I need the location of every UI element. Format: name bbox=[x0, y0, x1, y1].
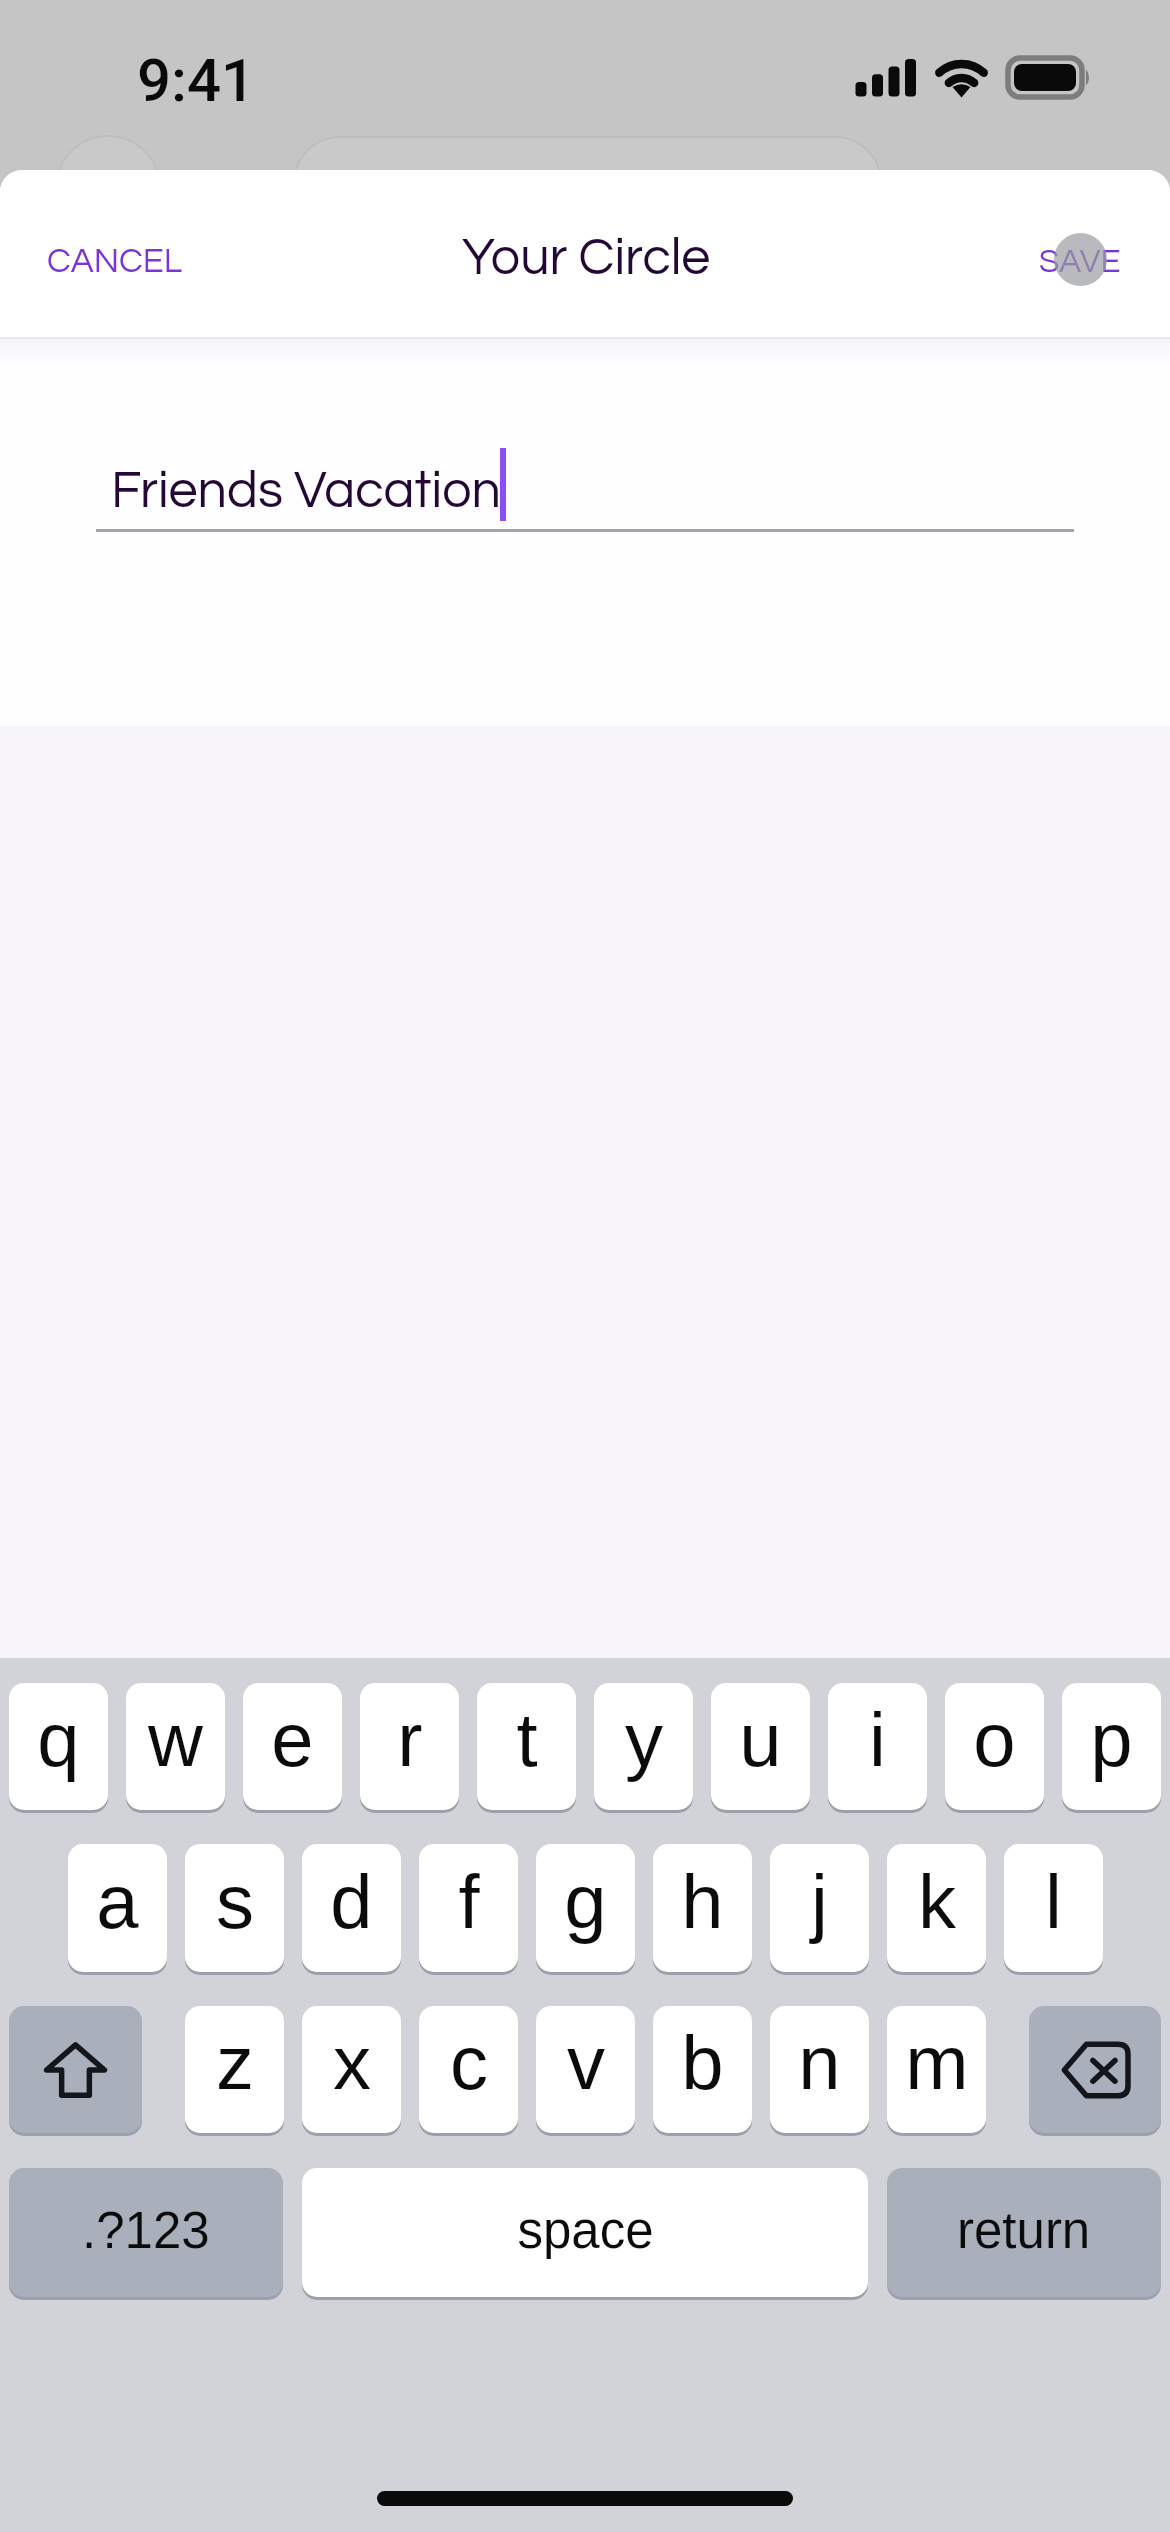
button[interactable]: p bbox=[1062, 1683, 1161, 1810]
staticText: s bbox=[216, 1859, 254, 1944]
button[interactable]: q bbox=[9, 1683, 108, 1810]
button[interactable]: CANCEL bbox=[20, 219, 210, 305]
button[interactable]: c bbox=[419, 2006, 518, 2133]
button[interactable]: d bbox=[302, 1844, 401, 1972]
staticText: CANCEL bbox=[47, 244, 183, 280]
staticText: x bbox=[333, 2020, 371, 2105]
button[interactable]: space bbox=[302, 2168, 868, 2297]
button[interactable]: o bbox=[945, 1683, 1044, 1810]
button[interactable]: b bbox=[653, 2006, 752, 2133]
button[interactable]: s bbox=[185, 1844, 284, 1972]
staticText: g bbox=[564, 1859, 607, 1944]
button[interactable]: Backspace bbox=[1029, 2006, 1161, 2133]
button[interactable]: l bbox=[1004, 1844, 1103, 1972]
button[interactable]: r bbox=[360, 1683, 459, 1810]
staticText: Your Circle bbox=[462, 231, 711, 285]
button[interactable]: n bbox=[770, 2006, 869, 2133]
button[interactable]: x bbox=[302, 2006, 401, 2133]
staticText: h bbox=[681, 1859, 724, 1944]
button[interactable]: m bbox=[887, 2006, 986, 2133]
button[interactable]: u bbox=[711, 1683, 810, 1810]
button[interactable]: e bbox=[243, 1683, 342, 1810]
staticText: n bbox=[798, 2020, 841, 2105]
staticText: d bbox=[330, 1859, 373, 1944]
staticText: v bbox=[567, 2020, 605, 2105]
button[interactable]: Shift bbox=[9, 2006, 142, 2133]
staticText: q bbox=[37, 1697, 80, 1782]
button[interactable]: h bbox=[653, 1844, 752, 1972]
button[interactable]: return bbox=[887, 2168, 1161, 2297]
button[interactable]: t bbox=[477, 1683, 576, 1810]
staticText: r bbox=[397, 1697, 423, 1782]
button[interactable]: .?123 bbox=[9, 2168, 283, 2297]
staticText: e bbox=[271, 1697, 314, 1782]
staticText: c bbox=[450, 2020, 488, 2105]
button[interactable]: z bbox=[185, 2006, 284, 2133]
staticText: .?123 bbox=[82, 2202, 210, 2259]
staticText: o bbox=[973, 1697, 1016, 1782]
button[interactable]: f bbox=[419, 1844, 518, 1972]
staticText: Friends Vacation bbox=[111, 464, 501, 518]
button[interactable]: v bbox=[536, 2006, 635, 2133]
staticText: space bbox=[517, 2202, 654, 2259]
button[interactable]: SAVE bbox=[997, 219, 1142, 305]
button[interactable]: g bbox=[536, 1844, 635, 1972]
staticText: i bbox=[869, 1697, 886, 1782]
staticText: z bbox=[216, 2020, 254, 2105]
button[interactable]: w bbox=[126, 1683, 225, 1810]
button[interactable]: k bbox=[887, 1844, 986, 1972]
staticText: j bbox=[811, 1859, 828, 1944]
staticText: return bbox=[957, 2202, 1091, 2259]
staticText: a bbox=[96, 1859, 139, 1944]
staticText: l bbox=[1045, 1859, 1062, 1944]
staticText: u bbox=[739, 1697, 782, 1782]
button[interactable]: j bbox=[770, 1844, 869, 1972]
staticText: t bbox=[516, 1697, 538, 1782]
staticText: p bbox=[1090, 1697, 1133, 1782]
staticText: k bbox=[918, 1859, 956, 1944]
staticText: w bbox=[148, 1697, 203, 1782]
staticText: m bbox=[905, 2020, 969, 2105]
staticText: y bbox=[625, 1697, 663, 1782]
staticText: 9:41 bbox=[137, 45, 256, 115]
button[interactable]: a bbox=[68, 1844, 167, 1972]
button[interactable]: i bbox=[828, 1683, 927, 1810]
staticText: f bbox=[458, 1859, 480, 1944]
button[interactable]: y bbox=[594, 1683, 693, 1810]
staticText: SAVE bbox=[1039, 245, 1121, 279]
staticText: b bbox=[681, 2020, 724, 2105]
